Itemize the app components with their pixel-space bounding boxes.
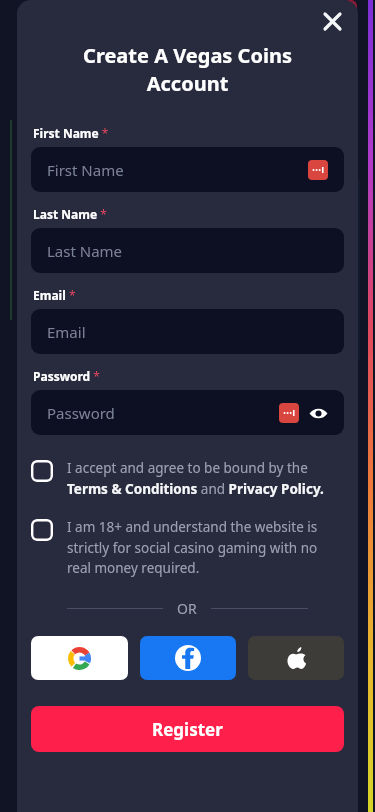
staticText: Password * xyxy=(33,368,100,384)
button[interactable]: I accept and agree to be bound by the Te… xyxy=(31,459,344,498)
staticText: Register xyxy=(152,718,223,741)
button[interactable]: First Name xyxy=(31,147,344,192)
button[interactable]: Close xyxy=(316,5,348,37)
staticText: First Name xyxy=(47,160,308,180)
staticText: Create A Vegas Coins Account xyxy=(57,42,318,97)
button[interactable]: Last Name xyxy=(31,228,344,273)
button[interactable]: Show password xyxy=(308,403,328,423)
button[interactable]: Email xyxy=(31,309,344,354)
staticText: I accept and agree to be bound by the Te… xyxy=(67,459,344,498)
staticText: Last Name xyxy=(47,241,328,261)
button[interactable]: I am 18+ and understand the website is s… xyxy=(31,518,344,577)
button[interactable]: Sign in with Apple xyxy=(248,636,344,680)
staticText: I am 18+ and understand the website is s… xyxy=(67,518,344,577)
staticText: Email * xyxy=(33,287,76,303)
button[interactable]: Sign in with Google xyxy=(31,636,128,680)
button[interactable]: Password xyxy=(31,390,344,435)
staticText: OR xyxy=(177,599,197,618)
button[interactable]: Sign in with Facebook xyxy=(140,636,236,680)
staticText: Email xyxy=(47,322,328,342)
staticText: Last Name * xyxy=(33,206,107,222)
staticText: Password xyxy=(47,403,279,423)
staticText: First Name * xyxy=(33,125,109,141)
button[interactable]: Register xyxy=(31,706,344,752)
